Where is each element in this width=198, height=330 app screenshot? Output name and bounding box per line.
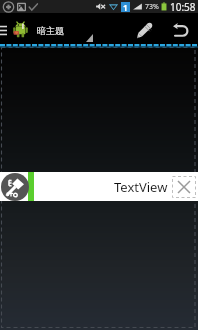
staticText: 10:58 [170,0,196,13]
button[interactable]: Close [172,176,196,198]
staticText: TextView [114,178,168,196]
button[interactable]: Edit [128,16,160,44]
staticText: 73% [145,2,159,12]
staticText: 1 [123,2,128,12]
button[interactable]: Menu [0,16,9,44]
button[interactable]: Tools [1,173,29,201]
staticText: 暗主题 [37,25,64,36]
button[interactable]: Undo [164,16,196,44]
